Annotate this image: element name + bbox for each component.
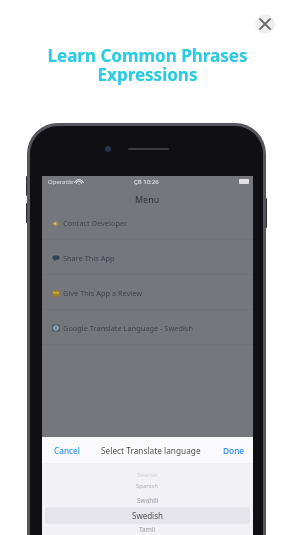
staticText: Spanish xyxy=(136,482,159,490)
staticText: Contact Developer xyxy=(63,218,128,228)
staticText: Give This App a Review xyxy=(63,288,143,298)
button[interactable]: Tamil xyxy=(42,524,253,535)
staticText: Tamil xyxy=(139,525,156,534)
button[interactable]: Spanish xyxy=(42,479,253,493)
button[interactable]: Done xyxy=(223,445,245,456)
staticText: Menu xyxy=(135,194,160,206)
staticText: Slovenian xyxy=(137,472,158,478)
staticText: Learn Common Phrases Expressions xyxy=(0,44,295,86)
button[interactable]: Share This App xyxy=(42,240,253,275)
button[interactable]: Close xyxy=(255,14,275,34)
staticText: ÇB 10:26 xyxy=(134,178,159,186)
button[interactable]: Swahili xyxy=(42,493,253,507)
button[interactable]: Give This App a Review xyxy=(42,275,253,310)
staticText: Swedish xyxy=(132,510,163,521)
staticText: Google Translate Language - Swedish xyxy=(63,323,193,333)
button[interactable]: Cancel xyxy=(54,445,80,456)
button[interactable]: Google Translate Language - Swedish xyxy=(42,310,253,345)
staticText: Share This App xyxy=(63,253,115,263)
button[interactable]: Contact Developer xyxy=(42,205,253,240)
staticText: Select Translate language xyxy=(101,445,201,456)
button[interactable]: Swedish xyxy=(45,507,250,524)
staticText: Swahili xyxy=(137,496,159,505)
staticText: Operatör xyxy=(48,178,74,186)
